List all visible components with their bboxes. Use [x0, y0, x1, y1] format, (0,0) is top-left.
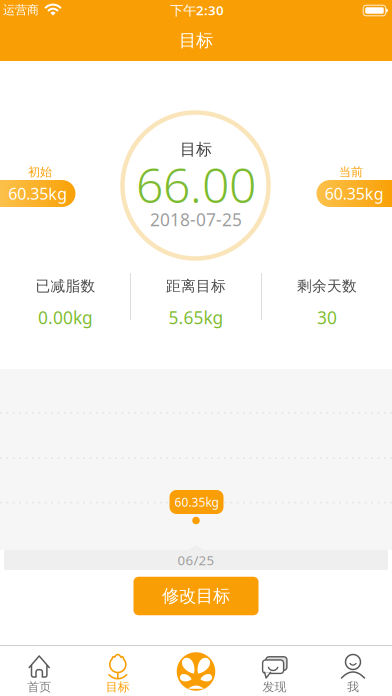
staticText: 下午2:30	[170, 1, 224, 19]
button[interactable]: 我	[314, 648, 392, 696]
button[interactable]: 记录	[157, 647, 235, 695]
staticText: 剩余天数	[297, 277, 357, 295]
staticText: 当前	[339, 165, 363, 179]
staticText: 发现	[263, 680, 287, 694]
staticText: 修改目标	[162, 585, 230, 607]
staticText: 2018-07-25	[150, 208, 242, 231]
staticText: 60.35kg	[325, 183, 384, 204]
staticText: 已减脂数	[35, 277, 95, 295]
staticText: 目标	[106, 680, 130, 694]
staticText: 60.35kg	[8, 183, 67, 204]
button[interactable]: 发现	[235, 648, 313, 696]
staticText: 06/25	[177, 551, 214, 569]
button[interactable]: 首页	[0, 648, 78, 696]
staticText: 5.65kg	[168, 306, 223, 329]
staticText: 目标	[180, 140, 212, 159]
button[interactable]: 修改目标	[133, 577, 258, 615]
staticText: 60.35kg	[174, 494, 218, 510]
staticText: 初始	[28, 165, 52, 179]
staticText: 运营商	[3, 3, 39, 17]
button[interactable]: 目标	[79, 648, 157, 696]
staticText: 目标	[179, 30, 213, 51]
staticText: 首页	[27, 680, 51, 694]
staticText: 我	[347, 680, 359, 694]
staticText: 30	[317, 306, 337, 329]
staticText: 0.00kg	[38, 306, 93, 329]
staticText: 66.00	[136, 153, 256, 216]
staticText: 距离目标	[166, 277, 226, 295]
